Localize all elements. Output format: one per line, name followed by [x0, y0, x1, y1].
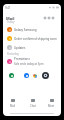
- button[interactable]: Meet: [42, 98, 61, 111]
- staticText: Meet: [48, 104, 55, 108]
- button[interactable]: Order confirmed shipping soon: [3, 34, 61, 43]
- button[interactable]: Account: [51, 15, 55, 20]
- button[interactable]: Sort: [47, 15, 51, 20]
- staticText: Yesterday: [7, 52, 19, 56]
- staticText: Order confirmed shipping soon: [14, 37, 57, 41]
- button[interactable]: Promotions: [3, 55, 61, 68]
- button[interactable]: Messenger: [24, 73, 29, 78]
- staticText: Galaxy Samsung: [14, 28, 37, 32]
- staticText: 9:41: [5, 6, 11, 10]
- button[interactable]: Mail: [3, 98, 23, 111]
- staticText: Promotions: [14, 57, 30, 61]
- staticText: Updates: [14, 46, 26, 50]
- button[interactable]: Google: [33, 74, 37, 78]
- button[interactable]: Chat: [23, 98, 42, 111]
- button[interactable]: WhatsApp: [9, 73, 14, 78]
- button[interactable]: Galaxy Samsung: [3, 25, 61, 34]
- staticText: Mail: [6, 16, 15, 21]
- staticText: Today: [7, 20, 15, 24]
- button[interactable]: Updates: [3, 43, 61, 52]
- staticText: Sale ends today at 5pm: [14, 62, 44, 66]
- button[interactable]: Search: [43, 15, 47, 20]
- staticText: Mail: [10, 104, 16, 108]
- staticText: Chat: [30, 104, 36, 108]
- button[interactable]: Lens: [42, 72, 49, 79]
